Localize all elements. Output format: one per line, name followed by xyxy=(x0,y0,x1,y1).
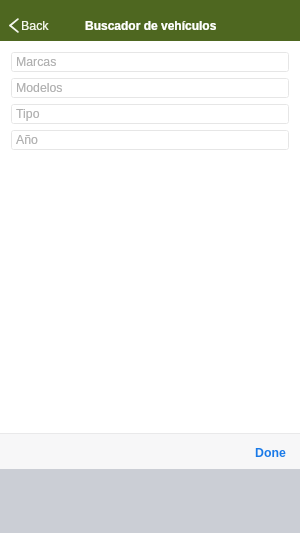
button[interactable]: Marcas xyxy=(11,52,289,72)
staticText: Tipo xyxy=(16,107,40,121)
staticText: Modelos xyxy=(16,81,63,95)
button[interactable]: Done xyxy=(242,437,300,467)
button[interactable]: Año xyxy=(11,130,289,150)
staticText: Back xyxy=(21,19,49,33)
other: Back xyxy=(9,18,19,33)
staticText: Buscador de vehículos xyxy=(85,19,217,32)
button[interactable]: Tipo xyxy=(11,104,289,124)
button[interactable]: Modelos xyxy=(11,78,289,98)
button[interactable]: Back xyxy=(6,14,55,37)
staticText: Marcas xyxy=(16,55,57,69)
staticText: Año xyxy=(16,133,38,147)
